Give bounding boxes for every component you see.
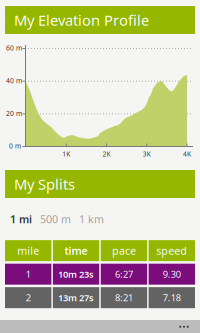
button[interactable]: mile	[5, 240, 51, 261]
staticText: 9.30	[163, 268, 181, 280]
button[interactable]: 6:27	[101, 264, 147, 285]
staticText: 20 m	[6, 109, 22, 118]
staticText: 10m 23s	[58, 268, 94, 280]
button[interactable]: 1 mi	[10, 212, 32, 226]
staticText: 13m 27s	[58, 291, 94, 304]
staticText: speed	[156, 244, 187, 258]
button[interactable]: 1	[5, 264, 51, 285]
staticText: 4K	[183, 150, 191, 158]
staticText: My Splits	[14, 174, 75, 194]
button[interactable]: 13m 27s	[53, 287, 99, 308]
button[interactable]: pace	[101, 240, 147, 261]
staticText: 500 m	[40, 212, 71, 226]
staticText: 1 mi	[10, 212, 32, 226]
staticText: 2	[26, 291, 31, 304]
button[interactable]: 9.30	[149, 264, 195, 285]
staticText: 7.18	[163, 291, 181, 304]
staticText: 40 m	[6, 76, 22, 85]
button[interactable]: speed	[149, 240, 195, 261]
button[interactable]: 1 km	[79, 212, 104, 226]
button[interactable]: 500 m	[40, 212, 71, 226]
button[interactable]: 10m 23s	[53, 264, 99, 285]
staticText: pace	[112, 244, 136, 258]
staticText: 1 km	[79, 212, 104, 226]
staticText: My Elevation Profile	[14, 10, 149, 30]
staticText: mile	[17, 244, 39, 258]
button[interactable]: 7.18	[149, 287, 195, 308]
button[interactable]: More options	[0, 320, 200, 333]
staticText: 8:21	[115, 291, 133, 304]
staticText: 3K	[143, 150, 151, 158]
staticText: 2K	[102, 150, 110, 158]
staticText: 0 m	[9, 142, 21, 150]
staticText: 1	[26, 268, 31, 280]
button[interactable]: 2	[5, 287, 51, 308]
button[interactable]: time	[53, 240, 99, 261]
staticText: 6:27	[115, 268, 133, 280]
staticText: 1K	[62, 150, 70, 158]
staticText: time	[65, 244, 88, 258]
staticText: 60 m	[6, 44, 22, 52]
button[interactable]: 8:21	[101, 287, 147, 308]
